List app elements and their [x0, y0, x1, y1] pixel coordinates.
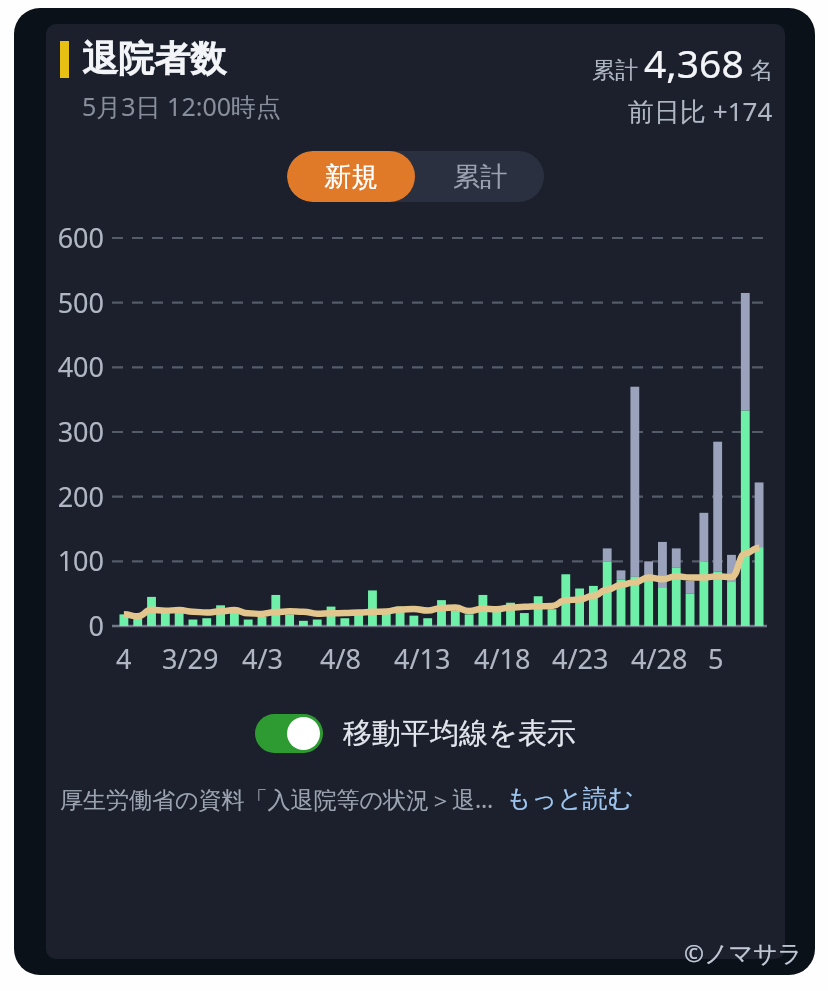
button[interactable]: 移動平均線を表示	[249, 708, 582, 759]
staticText: 400	[46, 348, 104, 385]
staticText: 厚生労働省の資料「入退院等の状況＞退…	[60, 783, 494, 814]
staticText: 4/3	[242, 640, 283, 677]
staticText: 退院者数	[82, 36, 226, 81]
button[interactable]: 新規	[287, 151, 415, 202]
staticText: 名	[744, 53, 773, 84]
staticText: 前日比 +174	[628, 93, 773, 129]
staticText: 新規	[324, 160, 378, 194]
button[interactable]: 累計	[415, 151, 544, 202]
staticText: もっと読む	[506, 783, 634, 814]
staticText: 3/29	[162, 640, 219, 677]
staticText: 5月3日 12:00時点	[82, 89, 282, 123]
button[interactable]: もっと読む	[506, 783, 634, 814]
staticText: 500	[46, 284, 104, 321]
staticText: 4/8	[320, 640, 361, 677]
staticText: 4,368	[644, 36, 744, 89]
staticText: 100	[46, 542, 104, 579]
staticText: 累計	[453, 160, 507, 194]
staticText: 4	[116, 640, 132, 677]
staticText: 移動平均線を表示	[343, 715, 576, 752]
staticText: 累計	[592, 53, 644, 84]
staticText: 4/18	[474, 640, 531, 677]
staticText: 600	[46, 219, 104, 256]
staticText: 4/23	[552, 640, 609, 677]
staticText: 200	[46, 478, 104, 515]
staticText: 4/28	[631, 640, 688, 677]
staticText: 5	[708, 640, 724, 677]
staticText: ©ノマサラ	[684, 936, 803, 969]
staticText: 4/13	[394, 640, 451, 677]
staticText: 0	[46, 607, 104, 644]
staticText: 300	[46, 413, 104, 450]
